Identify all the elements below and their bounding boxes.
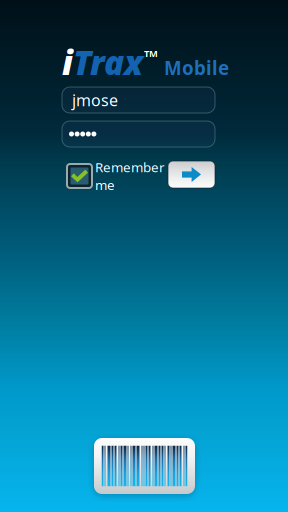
button[interactable]: Sign in (168, 161, 215, 188)
staticText: jmose (72, 89, 118, 111)
staticText: Remember me (95, 158, 165, 194)
button[interactable]: jmose (62, 87, 215, 113)
button[interactable] (62, 121, 215, 147)
staticText: TM (144, 47, 158, 60)
button[interactable]: Remember me (67, 163, 167, 189)
staticText: i (62, 40, 73, 84)
staticText: Trax (73, 40, 143, 84)
staticText: Mobile (164, 55, 229, 80)
